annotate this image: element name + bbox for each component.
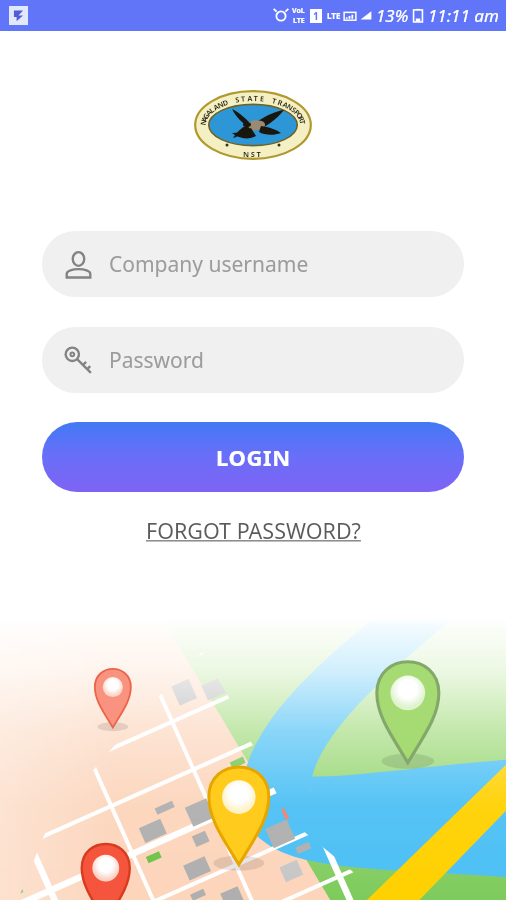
- staticText: 1: [313, 9, 319, 23]
- staticText: LTE: [327, 10, 341, 21]
- button[interactable]: LOGIN: [42, 422, 464, 492]
- button[interactable]: FORGOT PASSWORD?: [140, 513, 367, 548]
- staticText: VoL: [292, 6, 305, 16]
- staticText: LTE: [293, 16, 305, 26]
- staticText: 11:11 am: [428, 4, 499, 27]
- staticText: Password: [109, 346, 204, 375]
- other: App icon: [9, 6, 28, 25]
- button[interactable]: Company username: [42, 231, 464, 297]
- staticText: Company username: [109, 250, 309, 279]
- staticText: 13%: [376, 4, 409, 27]
- staticText: LOGIN: [216, 442, 291, 472]
- button[interactable]: Password: [42, 327, 464, 393]
